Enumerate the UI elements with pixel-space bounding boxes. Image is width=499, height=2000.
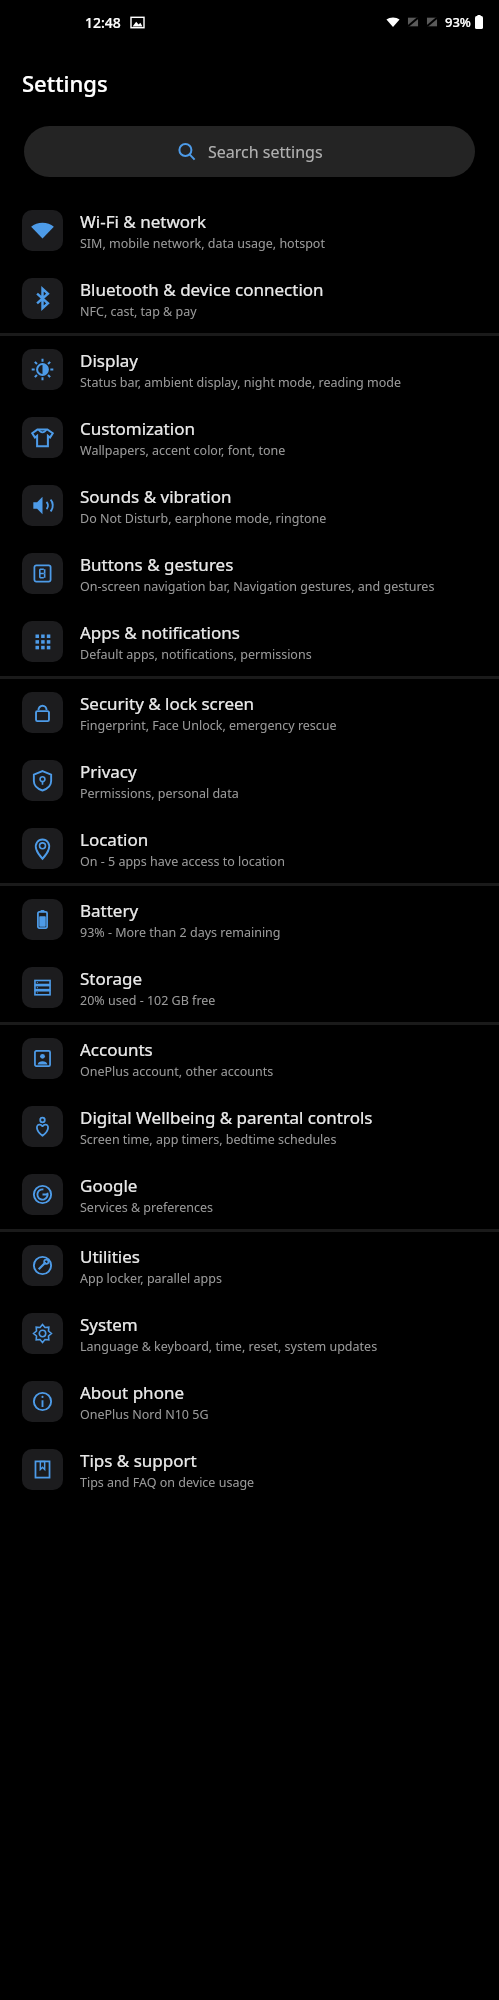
staticText: Utilities <box>80 1245 140 1268</box>
button[interactable]: Display <box>0 336 499 404</box>
staticText: 93% <box>445 13 471 31</box>
staticText: 93% - More than 2 days remaining <box>80 924 281 941</box>
button[interactable]: Wi-Fi & network <box>0 197 499 265</box>
staticText: Default apps, notifications, permissions <box>80 646 312 663</box>
staticText: Status bar, ambient display, night mode,… <box>80 374 402 391</box>
staticText: Sounds & vibration <box>80 485 232 508</box>
staticText: Location <box>80 828 149 851</box>
button[interactable]: System <box>0 1300 499 1368</box>
button[interactable]: Tips & support <box>0 1436 499 1504</box>
staticText: On-screen navigation bar, Navigation ges… <box>80 578 435 595</box>
staticText: 12:48 <box>85 13 121 32</box>
staticText: Battery <box>80 899 139 922</box>
staticText: Settings <box>22 68 108 98</box>
staticText: Services & preferences <box>80 1199 214 1216</box>
staticText: About phone <box>80 1381 185 1404</box>
staticText: Tips & support <box>80 1449 197 1472</box>
staticText: SIM, mobile network, data usage, hotspot <box>80 235 325 252</box>
button[interactable]: Apps & notifications <box>0 608 499 676</box>
staticText: Language & keyboard, time, reset, system… <box>80 1338 378 1355</box>
button[interactable]: Privacy <box>0 747 499 815</box>
staticText: Permissions, personal data <box>80 785 239 802</box>
staticText: Tips and FAQ on device usage <box>80 1474 255 1491</box>
staticText: Apps & notifications <box>80 621 240 644</box>
staticText: Privacy <box>80 760 137 783</box>
button[interactable]: Google <box>0 1161 499 1229</box>
button[interactable]: Battery <box>0 886 499 954</box>
staticText: App locker, parallel apps <box>80 1270 222 1287</box>
button[interactable]: Storage <box>0 954 499 1022</box>
staticText: Security & lock screen <box>80 692 255 715</box>
staticText: Customization <box>80 417 195 440</box>
staticText: Screen time, app timers, bedtime schedul… <box>80 1131 337 1148</box>
button[interactable]: Sounds & vibration <box>0 472 499 540</box>
button[interactable]: Location <box>0 815 499 883</box>
staticText: Display <box>80 349 138 372</box>
button[interactable]: Digital Wellbeing & parental controls <box>0 1093 499 1161</box>
button[interactable]: Accounts <box>0 1025 499 1093</box>
button[interactable]: Search settings <box>24 126 475 177</box>
staticText: OnePlus Nord N10 5G <box>80 1406 209 1423</box>
staticText: Wallpapers, accent color, font, tone <box>80 442 286 459</box>
staticText: Digital Wellbeing & parental controls <box>80 1106 373 1129</box>
staticText: Do Not Disturb, earphone mode, ringtone <box>80 510 327 527</box>
button[interactable]: Customization <box>0 404 499 472</box>
staticText: Buttons & gestures <box>80 553 234 576</box>
staticText: Bluetooth & device connection <box>80 278 324 301</box>
staticText: OnePlus account, other accounts <box>80 1063 274 1080</box>
button[interactable]: Bluetooth & device connection <box>0 265 499 333</box>
staticText: System <box>80 1313 138 1336</box>
button[interactable]: Utilities <box>0 1232 499 1300</box>
staticText: Storage <box>80 967 143 990</box>
staticText: Accounts <box>80 1038 153 1061</box>
staticText: On - 5 apps have access to location <box>80 853 285 870</box>
button[interactable]: Security & lock screen <box>0 679 499 747</box>
staticText: Search settings <box>208 141 323 163</box>
staticText: Wi-Fi & network <box>80 210 207 233</box>
staticText: 20% used - 102 GB free <box>80 992 216 1009</box>
staticText: Google <box>80 1174 138 1197</box>
button[interactable]: Buttons & gestures <box>0 540 499 608</box>
staticText: NFC, cast, tap & pay <box>80 303 197 320</box>
button[interactable]: About phone <box>0 1368 499 1436</box>
staticText: Fingerprint, Face Unlock, emergency resc… <box>80 717 337 734</box>
